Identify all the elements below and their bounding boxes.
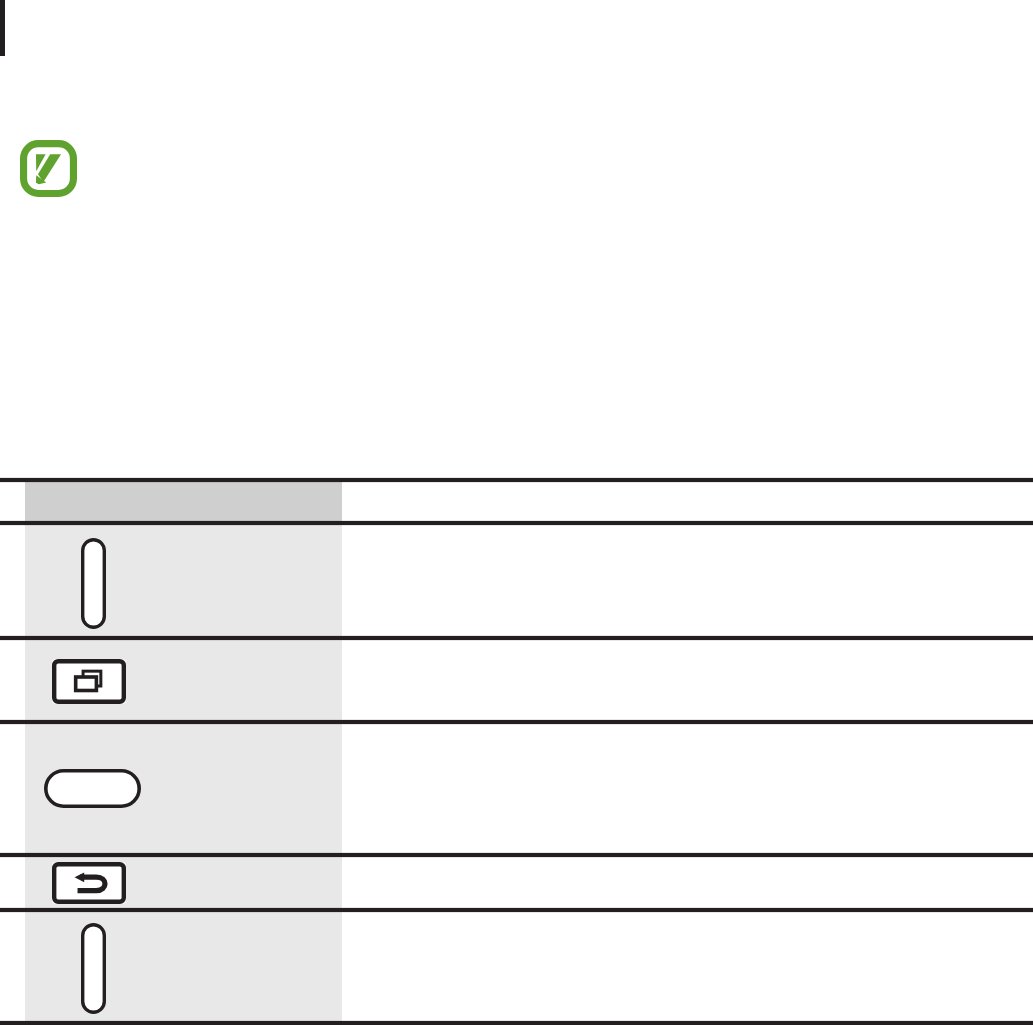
button[interactable]: Volume key [81,923,106,1014]
button[interactable]: S Note [20,140,77,197]
button[interactable]: Power key [81,538,106,629]
button[interactable]: Back key [52,862,126,904]
button[interactable]: Home key [44,769,141,808]
button[interactable]: Recents key [52,659,126,704]
